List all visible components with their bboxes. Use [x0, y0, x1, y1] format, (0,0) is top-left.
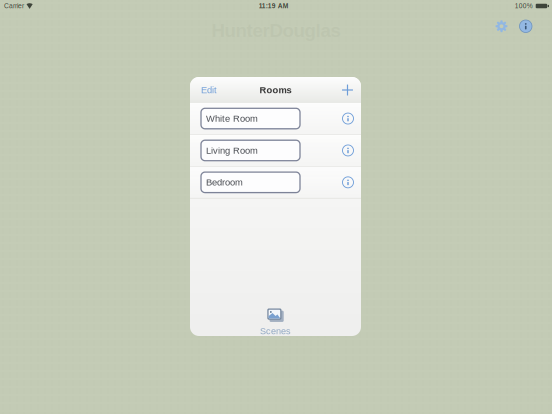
staticText: White Room [206, 113, 258, 124]
staticText: 11:19 AM [259, 2, 289, 10]
button[interactable]: Details for White Room [336, 107, 359, 130]
staticText: Scenes [260, 326, 291, 336]
button[interactable]: Details for Living Room [336, 139, 359, 162]
button[interactable]: Details for Bedroom [336, 171, 359, 194]
button[interactable]: Edit [190, 79, 224, 101]
button[interactable]: About [513, 14, 538, 38]
button[interactable]: Add room [335, 78, 361, 101]
staticText: Bedroom [206, 177, 243, 187]
staticText: Edit [201, 85, 217, 95]
button[interactable]: Bedroom [201, 172, 300, 193]
staticText: Carrier [4, 2, 24, 10]
button[interactable]: Living Room [201, 140, 300, 161]
staticText: 100% [515, 2, 533, 10]
staticText: Rooms [259, 85, 291, 95]
staticText: Living Room [206, 145, 258, 156]
button[interactable]: Settings [489, 14, 513, 38]
button[interactable]: White Room [201, 108, 300, 129]
button[interactable]: Scenes [190, 300, 361, 336]
